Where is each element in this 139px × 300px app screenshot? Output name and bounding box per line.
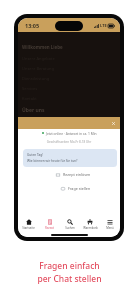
button[interactable]: Startseite bbox=[18, 219, 39, 229]
button[interactable]: Schließen bbox=[111, 121, 116, 126]
staticText: per Chat stellen bbox=[37, 273, 102, 285]
staticText: Suchen bbox=[65, 226, 75, 229]
button[interactable]: Suchen bbox=[60, 219, 80, 229]
staticText: LTE bbox=[100, 23, 107, 28]
button[interactable]: Frage stellen bbox=[18, 186, 91, 191]
staticText: Willkommen Liebe bbox=[22, 44, 63, 50]
staticText: Guten Tag! bbox=[27, 153, 44, 157]
button[interactable]: Rezept bbox=[39, 219, 60, 229]
staticText: Wie können wir heute für Sie tun? bbox=[27, 159, 78, 163]
button[interactable]: Rezept einlösen bbox=[18, 172, 91, 177]
staticText: 13:05 bbox=[25, 22, 40, 29]
staticText: Frage stellen bbox=[68, 186, 91, 191]
staticText: Jetzt online · Antwort in ca. 1 Min bbox=[46, 131, 97, 135]
staticText: Rezept bbox=[45, 226, 54, 229]
button[interactable]: Warenkorb bbox=[80, 219, 100, 229]
button[interactable]: Schließen bbox=[18, 117, 120, 129]
staticText: Startseite bbox=[22, 226, 35, 229]
staticText: Geschäftszeiten Mo-Fr 8-18 Uhr bbox=[18, 140, 120, 144]
staticText: Warenkorb bbox=[83, 226, 98, 229]
staticText: Fragen einfach bbox=[39, 260, 100, 272]
button[interactable]: Menü bbox=[100, 219, 120, 229]
staticText: Menü bbox=[106, 226, 114, 229]
staticText: Rezept einlösen bbox=[63, 172, 91, 177]
staticText: Über uns bbox=[22, 107, 45, 114]
